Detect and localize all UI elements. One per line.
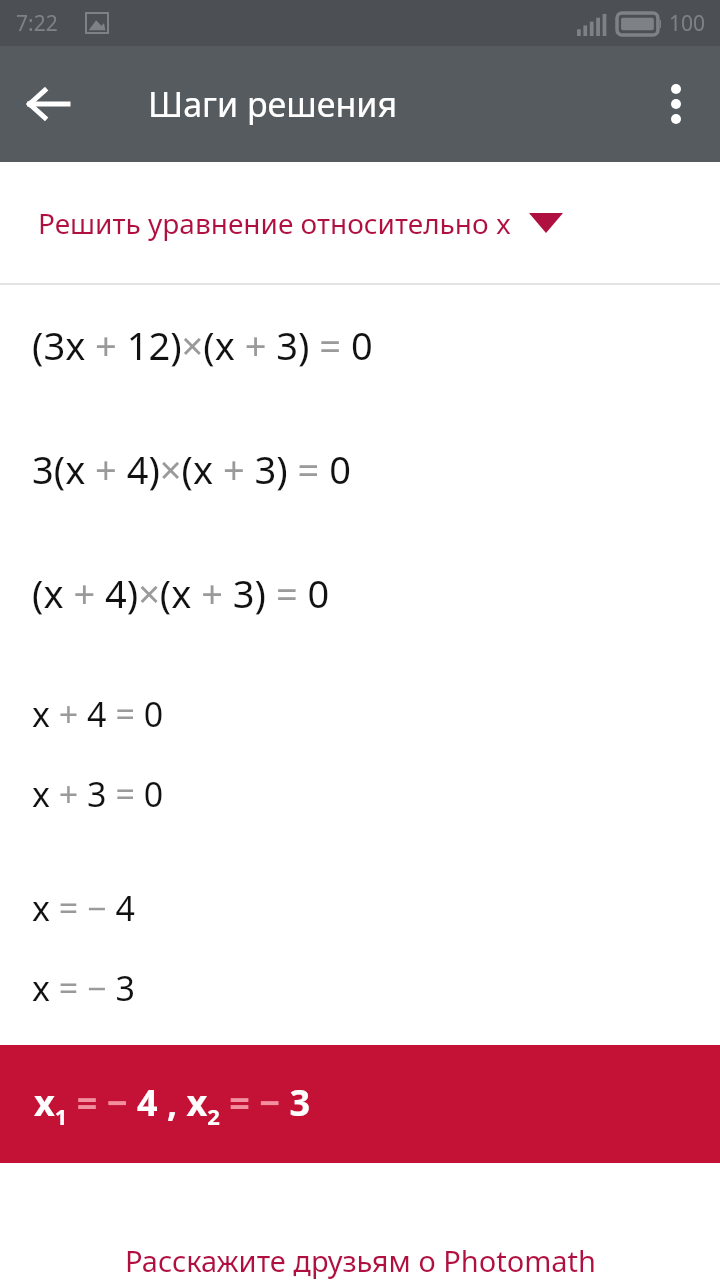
- staticText: Решить уравнение относительно x: [38, 204, 511, 242]
- staticText: x + 4 = 0: [32, 691, 164, 737]
- staticText: 7:22: [16, 9, 58, 38]
- staticText: (x + 4)×(x + 3) = 0: [32, 567, 330, 619]
- staticText: x + 3 = 0: [32, 771, 164, 817]
- staticText: x = − 3: [32, 965, 135, 1011]
- button[interactable]: Back: [0, 56, 96, 152]
- button[interactable]: Решить уравнение относительно x: [0, 162, 720, 283]
- staticText: Шаги решения: [148, 81, 398, 127]
- button[interactable]: x1 = − 4 , x2 = − 3: [0, 1045, 720, 1163]
- staticText: 100: [669, 9, 706, 38]
- staticText: x = − 4: [32, 885, 135, 931]
- staticText: (3x + 12)×(x + 3) = 0: [32, 319, 373, 371]
- button[interactable]: Расскажите друзьям о Photomath: [0, 1163, 720, 1280]
- staticText: Расскажите друзьям о Photomath: [125, 1241, 596, 1280]
- button[interactable]: More options: [632, 60, 720, 148]
- staticText: 3(x + 4)×(x + 3) = 0: [32, 443, 351, 495]
- staticText: x1 = − 4 , x2 = − 3: [34, 1078, 311, 1131]
